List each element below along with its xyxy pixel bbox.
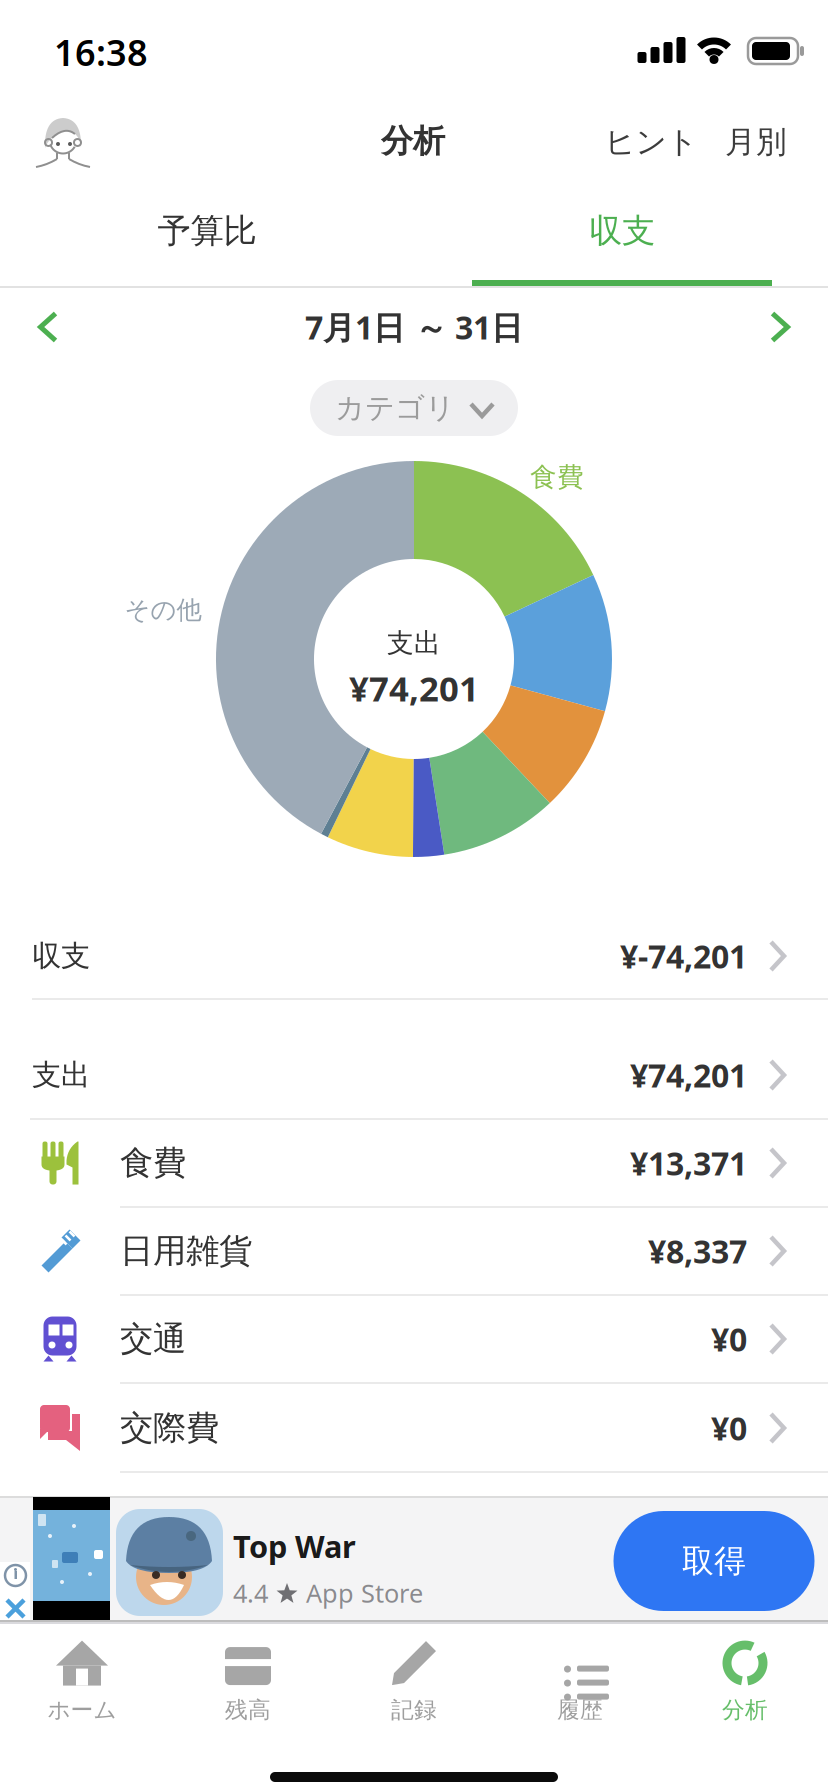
button[interactable]: 記録 bbox=[339, 1628, 489, 1736]
button[interactable]: 交通 bbox=[0, 1295, 828, 1383]
staticText: 支出 bbox=[32, 1057, 90, 1093]
staticText: 取得 bbox=[682, 1541, 746, 1581]
button[interactable] bbox=[26, 299, 69, 354]
staticText: ¥0 bbox=[711, 1407, 747, 1449]
button[interactable]: 取得 bbox=[613, 1511, 814, 1611]
staticText: カテゴリ bbox=[335, 390, 455, 426]
staticText: 7月1日 ～ 31日 bbox=[305, 306, 523, 348]
staticText: 月別 bbox=[725, 123, 787, 161]
staticText: 予算比 bbox=[157, 210, 256, 251]
staticText: ¥74,201 bbox=[630, 1054, 747, 1096]
staticText: 食費 bbox=[530, 461, 584, 493]
staticText: 履歴 bbox=[557, 1696, 603, 1724]
staticText: 4.4 bbox=[233, 1576, 268, 1610]
staticText: ¥13,371 bbox=[630, 1142, 747, 1184]
staticText: ホーム bbox=[47, 1696, 116, 1724]
staticText: ¥-74,201 bbox=[620, 935, 747, 977]
staticText: 分析 bbox=[381, 121, 445, 161]
staticText: 残高 bbox=[225, 1696, 271, 1724]
button[interactable]: 収支 bbox=[0, 912, 828, 1000]
staticText: 交際費 bbox=[120, 1407, 219, 1448]
button[interactable]: 交際費 bbox=[0, 1384, 828, 1472]
button[interactable] bbox=[35, 116, 91, 168]
staticText: その他 bbox=[124, 594, 201, 625]
staticText: ヒント bbox=[604, 123, 697, 161]
staticText: 16:38 bbox=[54, 28, 148, 76]
staticText: ¥8,337 bbox=[648, 1230, 747, 1272]
button[interactable]: ホーム bbox=[7, 1628, 157, 1736]
staticText: 支出 bbox=[387, 627, 441, 659]
button[interactable]: 月別 bbox=[725, 123, 787, 161]
staticText: ¥0 bbox=[711, 1318, 747, 1360]
button[interactable]: 支出 bbox=[0, 1031, 828, 1119]
button[interactable]: 分析 bbox=[670, 1628, 820, 1736]
staticText: Top War bbox=[233, 1526, 356, 1566]
button[interactable]: 食費 bbox=[0, 1119, 828, 1207]
button[interactable]: ヒント bbox=[604, 123, 697, 161]
staticText: 記録 bbox=[391, 1696, 437, 1724]
staticText: 日用雑貨 bbox=[120, 1230, 252, 1271]
button[interactable]: 残高 bbox=[173, 1628, 323, 1736]
staticText: 収支 bbox=[32, 938, 90, 974]
button[interactable] bbox=[758, 299, 801, 354]
staticText: ¥74,201 bbox=[349, 665, 479, 711]
button[interactable]: 日用雑貨 bbox=[0, 1207, 828, 1295]
button[interactable]: 履歴 bbox=[505, 1628, 655, 1736]
button[interactable]: カテゴリ bbox=[310, 380, 518, 436]
button[interactable]: 収支 bbox=[472, 196, 772, 266]
staticText: 食費 bbox=[120, 1142, 186, 1183]
staticText: 分析 bbox=[722, 1696, 768, 1724]
staticText: 交通 bbox=[120, 1318, 186, 1359]
staticText: 収支 bbox=[589, 210, 655, 251]
staticText: App Store bbox=[306, 1576, 423, 1610]
button[interactable]: 予算比 bbox=[57, 196, 357, 266]
